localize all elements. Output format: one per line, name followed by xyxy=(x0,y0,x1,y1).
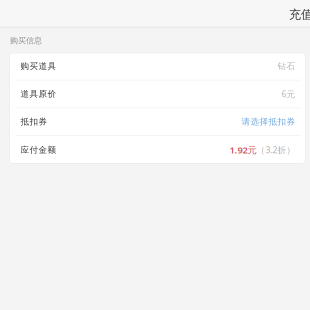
staticText: 抵扣券 xyxy=(20,116,47,127)
staticText: 购买信息 xyxy=(10,35,42,46)
button[interactable]: 应付金额 xyxy=(9,136,306,164)
button[interactable]: 购买道具 xyxy=(9,53,306,80)
staticText: 1.92元 xyxy=(229,143,256,156)
staticText: 充值 xyxy=(289,7,310,22)
staticText: 应付金额 xyxy=(20,144,56,155)
staticText: （3.2折） xyxy=(256,144,295,156)
button[interactable]: 道具原价 xyxy=(9,80,306,108)
button[interactable]: 充值 xyxy=(289,7,310,27)
staticText: 6元 xyxy=(281,88,295,100)
staticText: 道具原价 xyxy=(20,89,56,99)
staticText: 请选择抵扣券 xyxy=(241,116,295,127)
button[interactable]: 抵扣券 xyxy=(9,108,306,136)
staticText: 购买道具 xyxy=(20,61,56,72)
staticText: 钻石 xyxy=(277,61,295,72)
